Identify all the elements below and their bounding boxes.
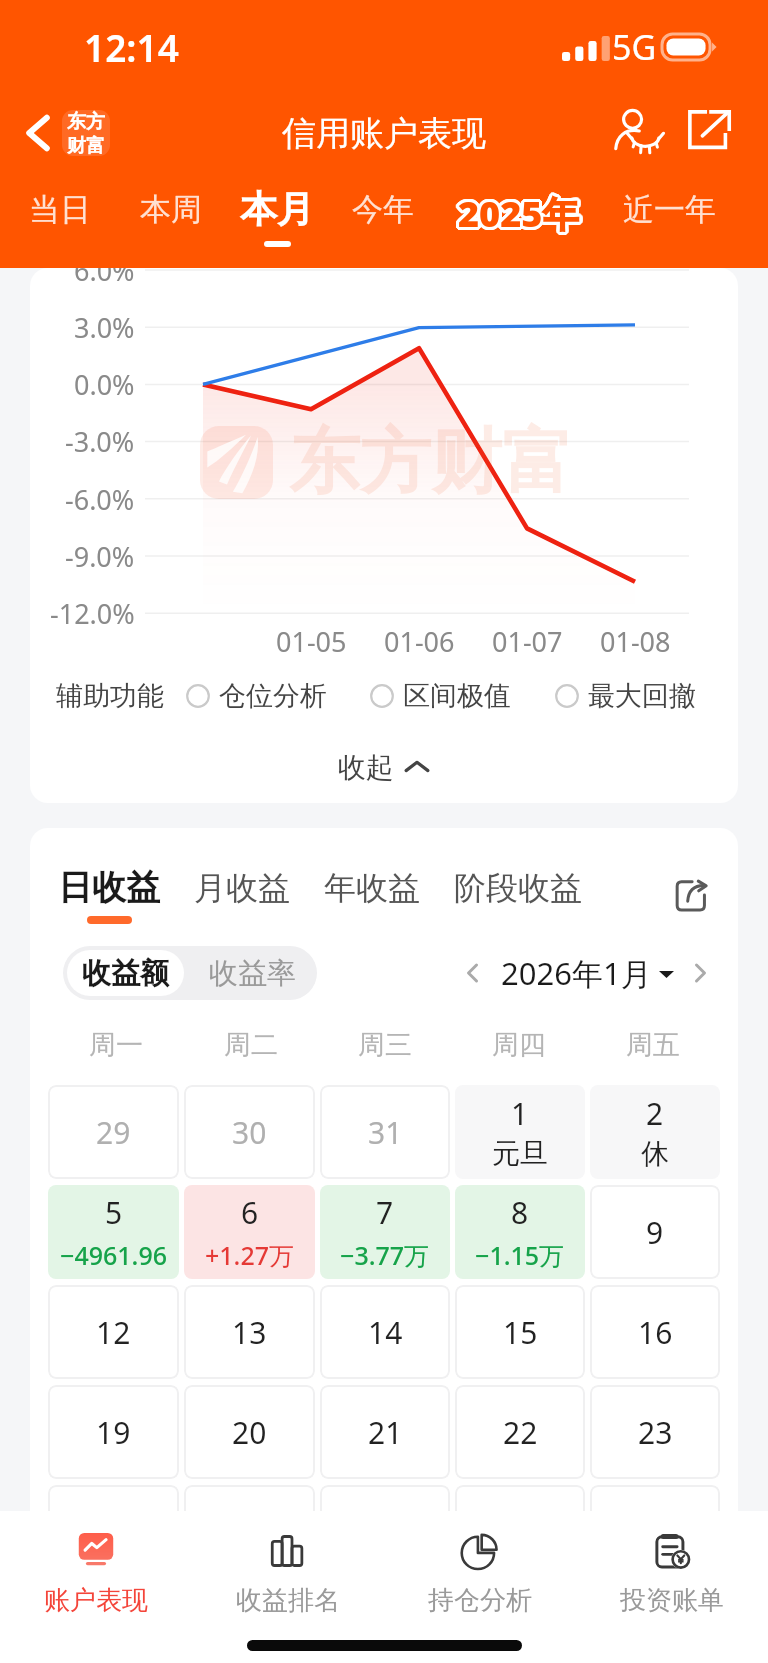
staticText: 收益排名 (236, 1584, 340, 1617)
button[interactable]: 27 (184, 1485, 315, 1579)
staticText: 5G (612, 24, 657, 70)
button[interactable]: 14 (320, 1285, 450, 1379)
button[interactable]: 收益率 (188, 946, 317, 1000)
staticText: 2025年 (461, 190, 582, 239)
button[interactable]: 收益排名 (192, 1511, 384, 1617)
button[interactable]: 2026年1月 (497, 946, 678, 1000)
staticText: 2025年 (458, 186, 579, 235)
staticText: 2025年 (457, 189, 578, 238)
staticText: 01-06 (384, 623, 455, 660)
button[interactable]: Share (666, 868, 720, 922)
button[interactable]: 20 (184, 1385, 315, 1479)
staticText: 2025年 (460, 190, 581, 239)
button[interactable]: 2025年 (440, 189, 596, 238)
button[interactable]: 持仓分析 (384, 1511, 576, 1617)
staticText: 周五 (626, 1028, 680, 1062)
button[interactable]: 投资账单 (576, 1511, 768, 1617)
staticText: 年收益 (324, 868, 420, 908)
button[interactable]: Back (18, 110, 118, 156)
button[interactable]: 仓位分析 (186, 673, 327, 719)
staticText: 2025年 (461, 188, 582, 237)
button[interactable]: 阶段收益 (454, 868, 582, 923)
button[interactable]: 收起 (30, 732, 738, 802)
button[interactable]: 9 (590, 1185, 720, 1279)
staticText: +1.27万 (205, 1238, 295, 1272)
staticText: 当日 (29, 190, 91, 229)
staticText: 22 (503, 1412, 538, 1453)
staticText: 15 (503, 1312, 538, 1353)
staticText: 仓位分析 (219, 679, 327, 713)
staticText: 2025年 (458, 189, 579, 238)
button[interactable]: 19 (48, 1385, 179, 1479)
staticText: 本月 (240, 186, 314, 233)
staticText: 2025年 (457, 191, 578, 240)
staticText: 19 (96, 1412, 131, 1453)
staticText: 2025年 (456, 189, 577, 238)
staticText: 01-07 (492, 623, 563, 660)
button[interactable]: 12 (48, 1285, 179, 1379)
staticText: 8 (511, 1192, 529, 1233)
staticText: 最大回撤 (588, 679, 696, 713)
staticText: 今年 (352, 190, 414, 229)
button[interactable]: Previous month (453, 953, 493, 993)
staticText: 2025年 (459, 191, 580, 240)
button[interactable]: 最大回撤 (555, 673, 696, 719)
button[interactable]: 22 (455, 1385, 585, 1479)
button[interactable]: 29 (455, 1485, 585, 1579)
staticText: 0.0% (74, 366, 135, 403)
button[interactable]: 账户表现 (0, 1511, 192, 1617)
button[interactable]: 今年 (323, 190, 443, 243)
button[interactable]: 30 (590, 1485, 720, 1579)
button[interactable]: 23 (590, 1385, 720, 1479)
button[interactable]: 7 (320, 1185, 450, 1279)
staticText: 阶段收益 (454, 868, 582, 908)
staticText: -9.0% (65, 538, 135, 575)
button[interactable]: 当日 (0, 190, 120, 243)
button[interactable]: 8 (455, 1185, 585, 1279)
button[interactable]: 2 (590, 1085, 720, 1179)
staticText: 2025年 (457, 192, 578, 241)
button[interactable]: 16 (590, 1285, 720, 1379)
button[interactable]: 15 (455, 1285, 585, 1379)
button[interactable]: Next month (680, 953, 720, 993)
button[interactable]: 区间极值 (370, 673, 511, 719)
button[interactable]: 6 (184, 1185, 315, 1279)
staticText: 区间极值 (403, 679, 511, 713)
button[interactable]: 本月 (217, 186, 337, 247)
button[interactable]: 21 (320, 1385, 450, 1479)
staticText: 6.0% (74, 268, 135, 289)
staticText: 2025年 (459, 188, 580, 237)
button[interactable]: 日收益 (58, 866, 160, 924)
button[interactable]: 31 (320, 1085, 450, 1179)
button[interactable]: Share (682, 104, 740, 162)
staticText: 信用账户表现 (282, 112, 486, 155)
staticText: 12:14 (84, 22, 179, 72)
staticText: 12 (96, 1312, 131, 1353)
button[interactable]: 月收益 (194, 868, 290, 923)
button[interactable]: 1 (455, 1085, 585, 1179)
button[interactable]: 近一年 (609, 190, 729, 243)
button[interactable]: 本周 (111, 190, 231, 243)
staticText: 26 (96, 1512, 131, 1553)
button[interactable]: 收益额 (67, 950, 184, 996)
button[interactable]: 年收益 (324, 868, 420, 923)
staticText: 2025年 (459, 187, 580, 236)
staticText: −1.15万 (475, 1238, 565, 1272)
staticText: 日收益 (58, 866, 160, 909)
button[interactable]: 30 (184, 1085, 315, 1179)
staticText: 9 (646, 1212, 664, 1253)
button[interactable]: 5 (48, 1185, 179, 1279)
button[interactable]: Account (610, 102, 672, 164)
staticText: 13 (232, 1312, 267, 1353)
button[interactable]: 13 (184, 1285, 315, 1379)
staticText: 2025年 (456, 188, 577, 237)
staticText: 账户表现 (44, 1584, 148, 1617)
button[interactable]: 29 (48, 1085, 179, 1179)
staticText: 财富 (67, 134, 105, 156)
staticText: 2025年 (456, 191, 577, 240)
button[interactable]: 26 (48, 1485, 179, 1579)
staticText: 2025年 (458, 190, 579, 239)
